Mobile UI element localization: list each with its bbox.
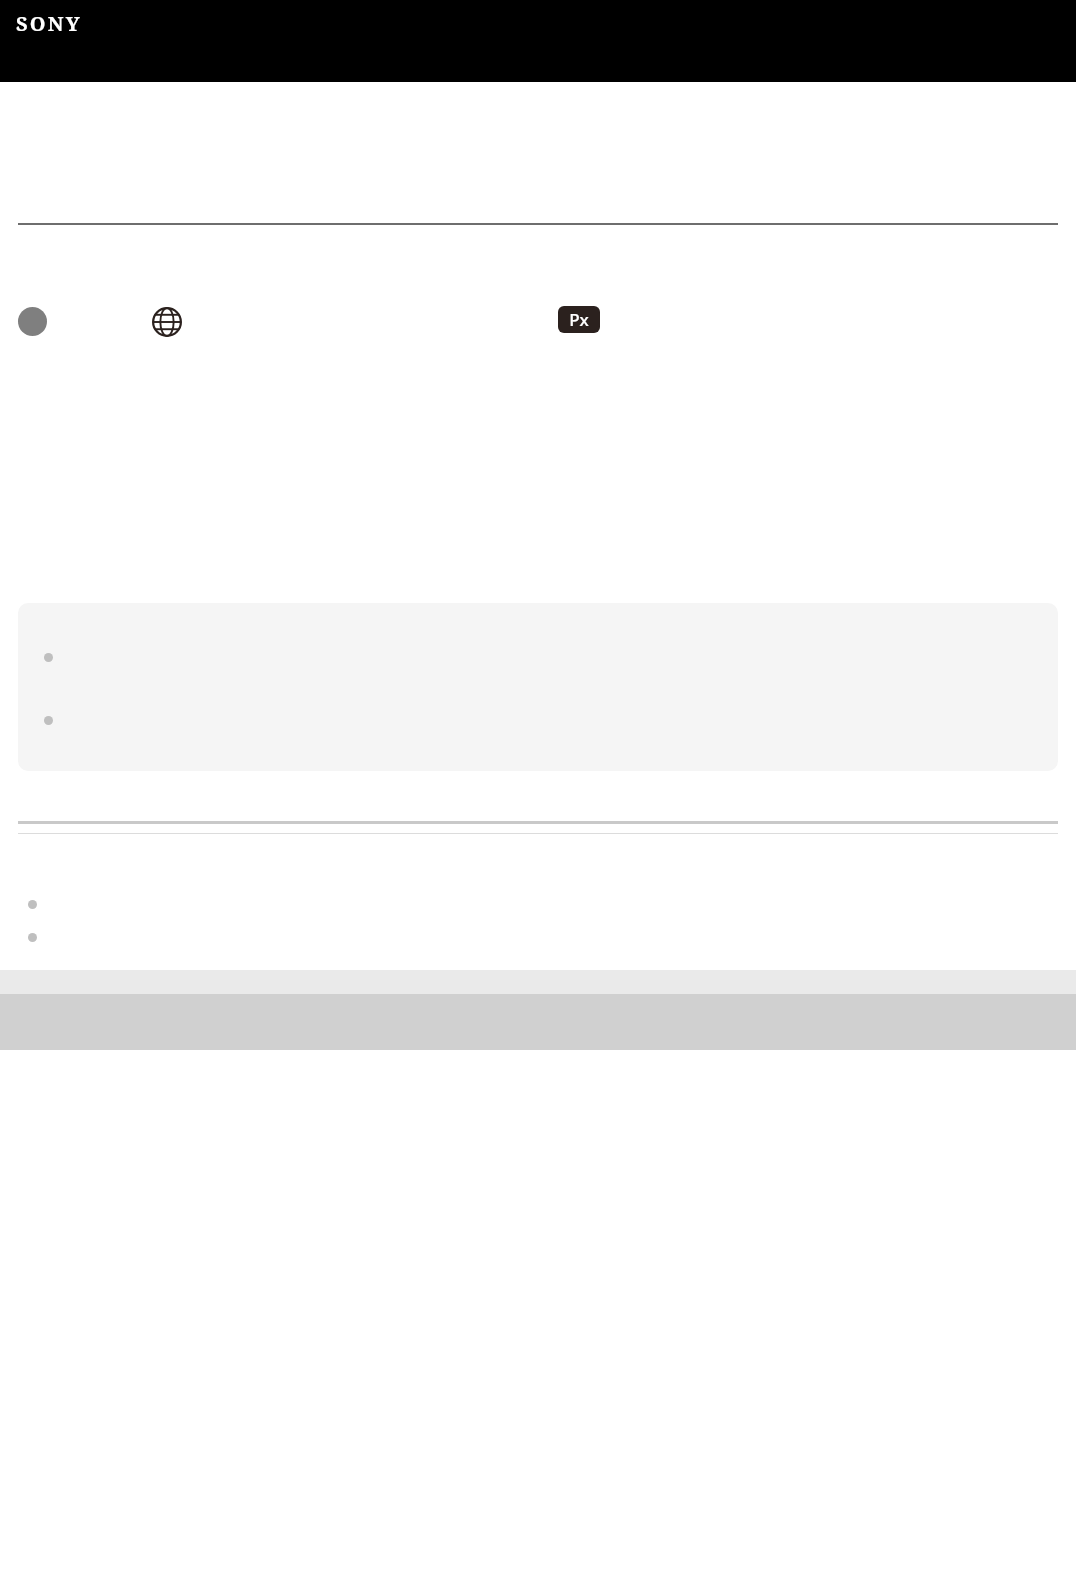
button[interactable]: List item 1: [0, 892, 1076, 916]
button[interactable]: List item 2: [0, 925, 1076, 949]
button[interactable]: Account: [18, 307, 47, 336]
button[interactable]: Pixel model: [558, 306, 600, 333]
staticText: SONY: [16, 10, 82, 37]
button[interactable]: Language: [152, 307, 182, 337]
staticText: Px: [569, 308, 589, 331]
button[interactable]: SONY home: [16, 10, 82, 37]
